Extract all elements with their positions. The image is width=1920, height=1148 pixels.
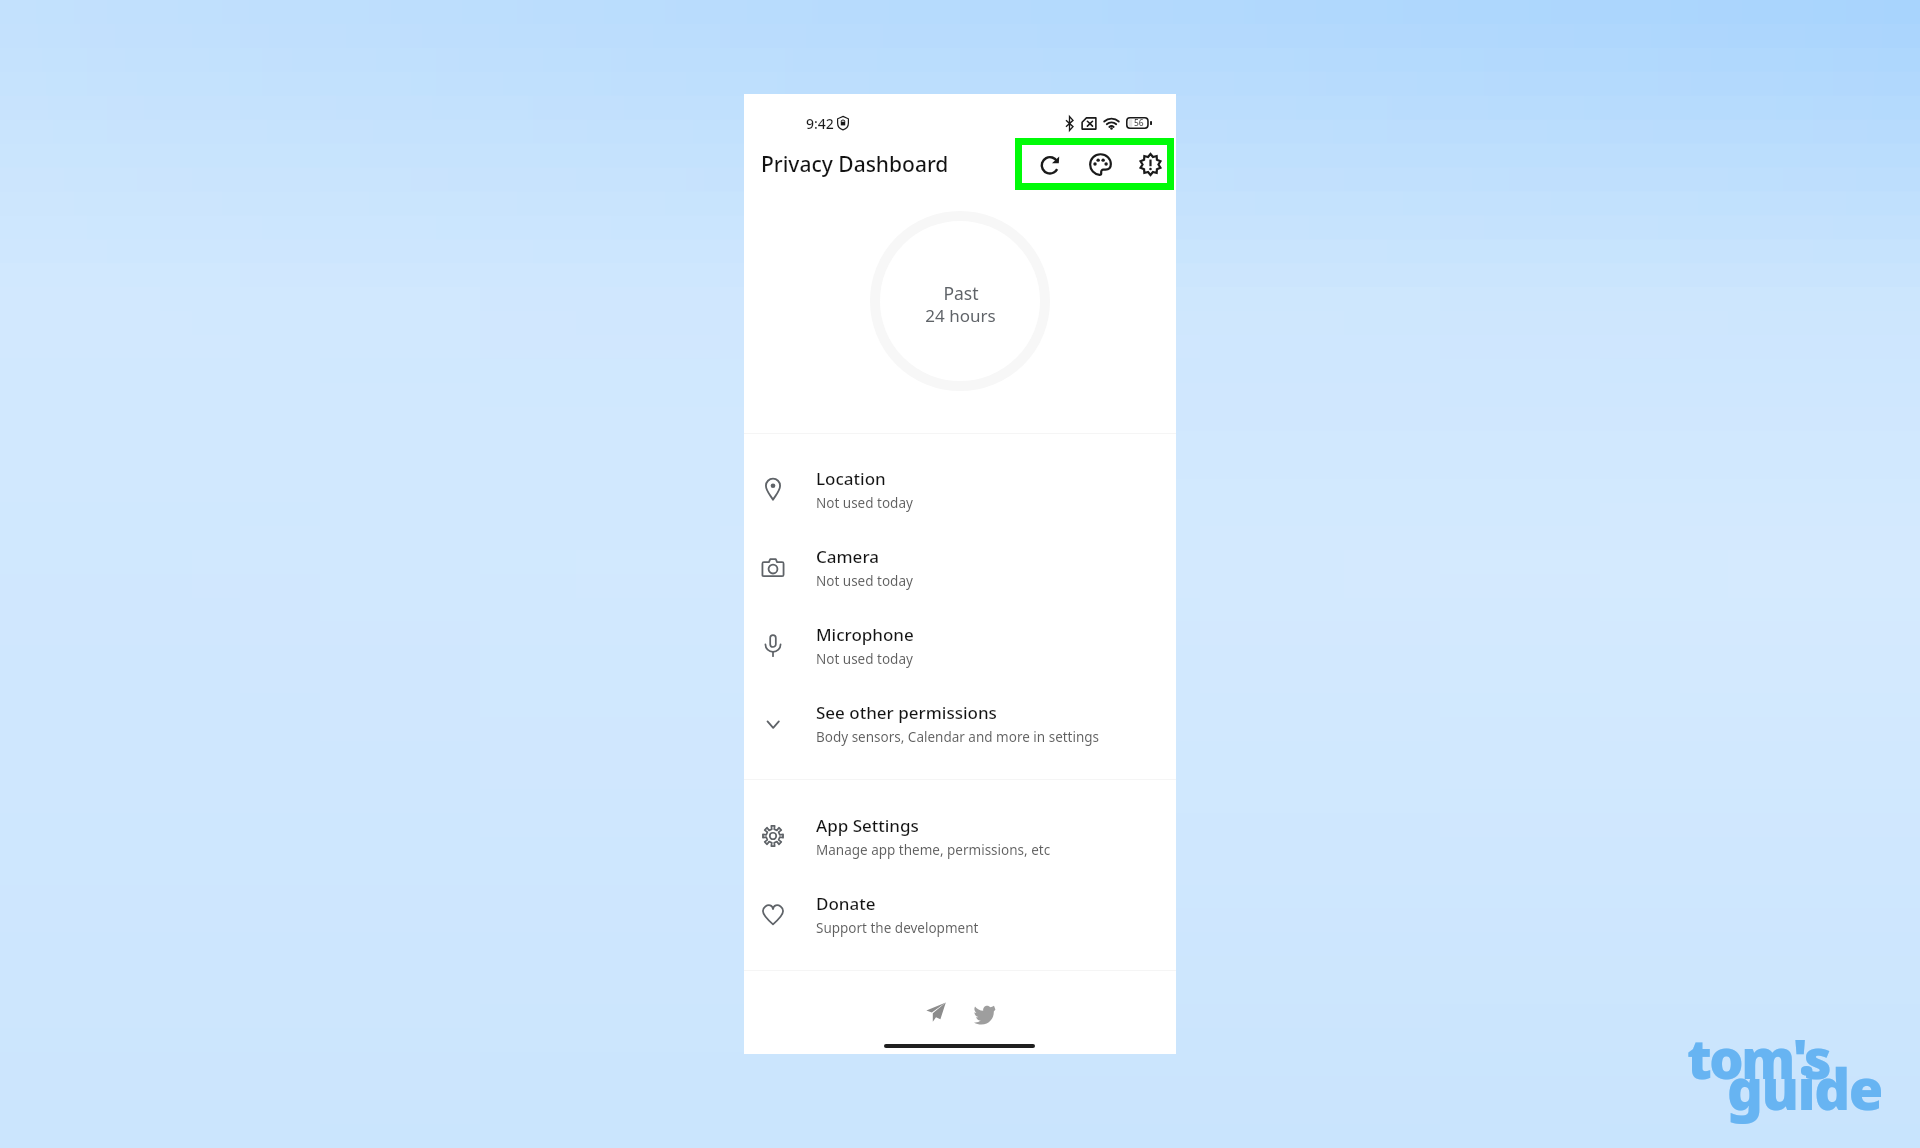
staticText: Donate — [816, 892, 876, 915]
button[interactable]: Microphone — [744, 609, 1176, 687]
staticText: Not used today — [816, 572, 913, 590]
staticText: Past — [943, 281, 979, 305]
staticText: Body sensors, Calendar and more in setti… — [816, 728, 1100, 746]
staticText: 24 hours — [925, 304, 996, 327]
button[interactable]: See other permissions — [744, 687, 1176, 765]
button[interactable]: Security check — [1130, 144, 1170, 184]
staticText: Not used today — [816, 650, 913, 668]
staticText: tom's — [1687, 1021, 1830, 1095]
button[interactable]: Change theme — [1080, 144, 1120, 184]
staticText: Location — [816, 467, 886, 490]
staticText: 56 — [1134, 117, 1144, 129]
staticText: Camera — [816, 545, 879, 568]
button[interactable]: Camera — [744, 531, 1176, 609]
button[interactable]: Twitter — [962, 990, 1006, 1034]
staticText: guide — [1727, 1050, 1882, 1126]
staticText: Not used today — [816, 494, 913, 512]
button[interactable]: Donate — [744, 878, 1176, 956]
staticText: 9:42 — [806, 114, 834, 133]
staticText: Manage app theme, permissions, etc — [816, 841, 1051, 859]
staticText: App Settings — [816, 814, 919, 837]
staticText: Microphone — [816, 623, 914, 646]
button[interactable]: Refresh — [1030, 144, 1070, 184]
staticText: Privacy Dashboard — [761, 150, 949, 179]
button[interactable]: Telegram — [914, 990, 958, 1034]
staticText: See other permissions — [816, 701, 997, 724]
staticText: Support the development — [816, 919, 979, 937]
button[interactable]: Location — [744, 453, 1176, 531]
button[interactable]: App Settings — [744, 800, 1176, 878]
